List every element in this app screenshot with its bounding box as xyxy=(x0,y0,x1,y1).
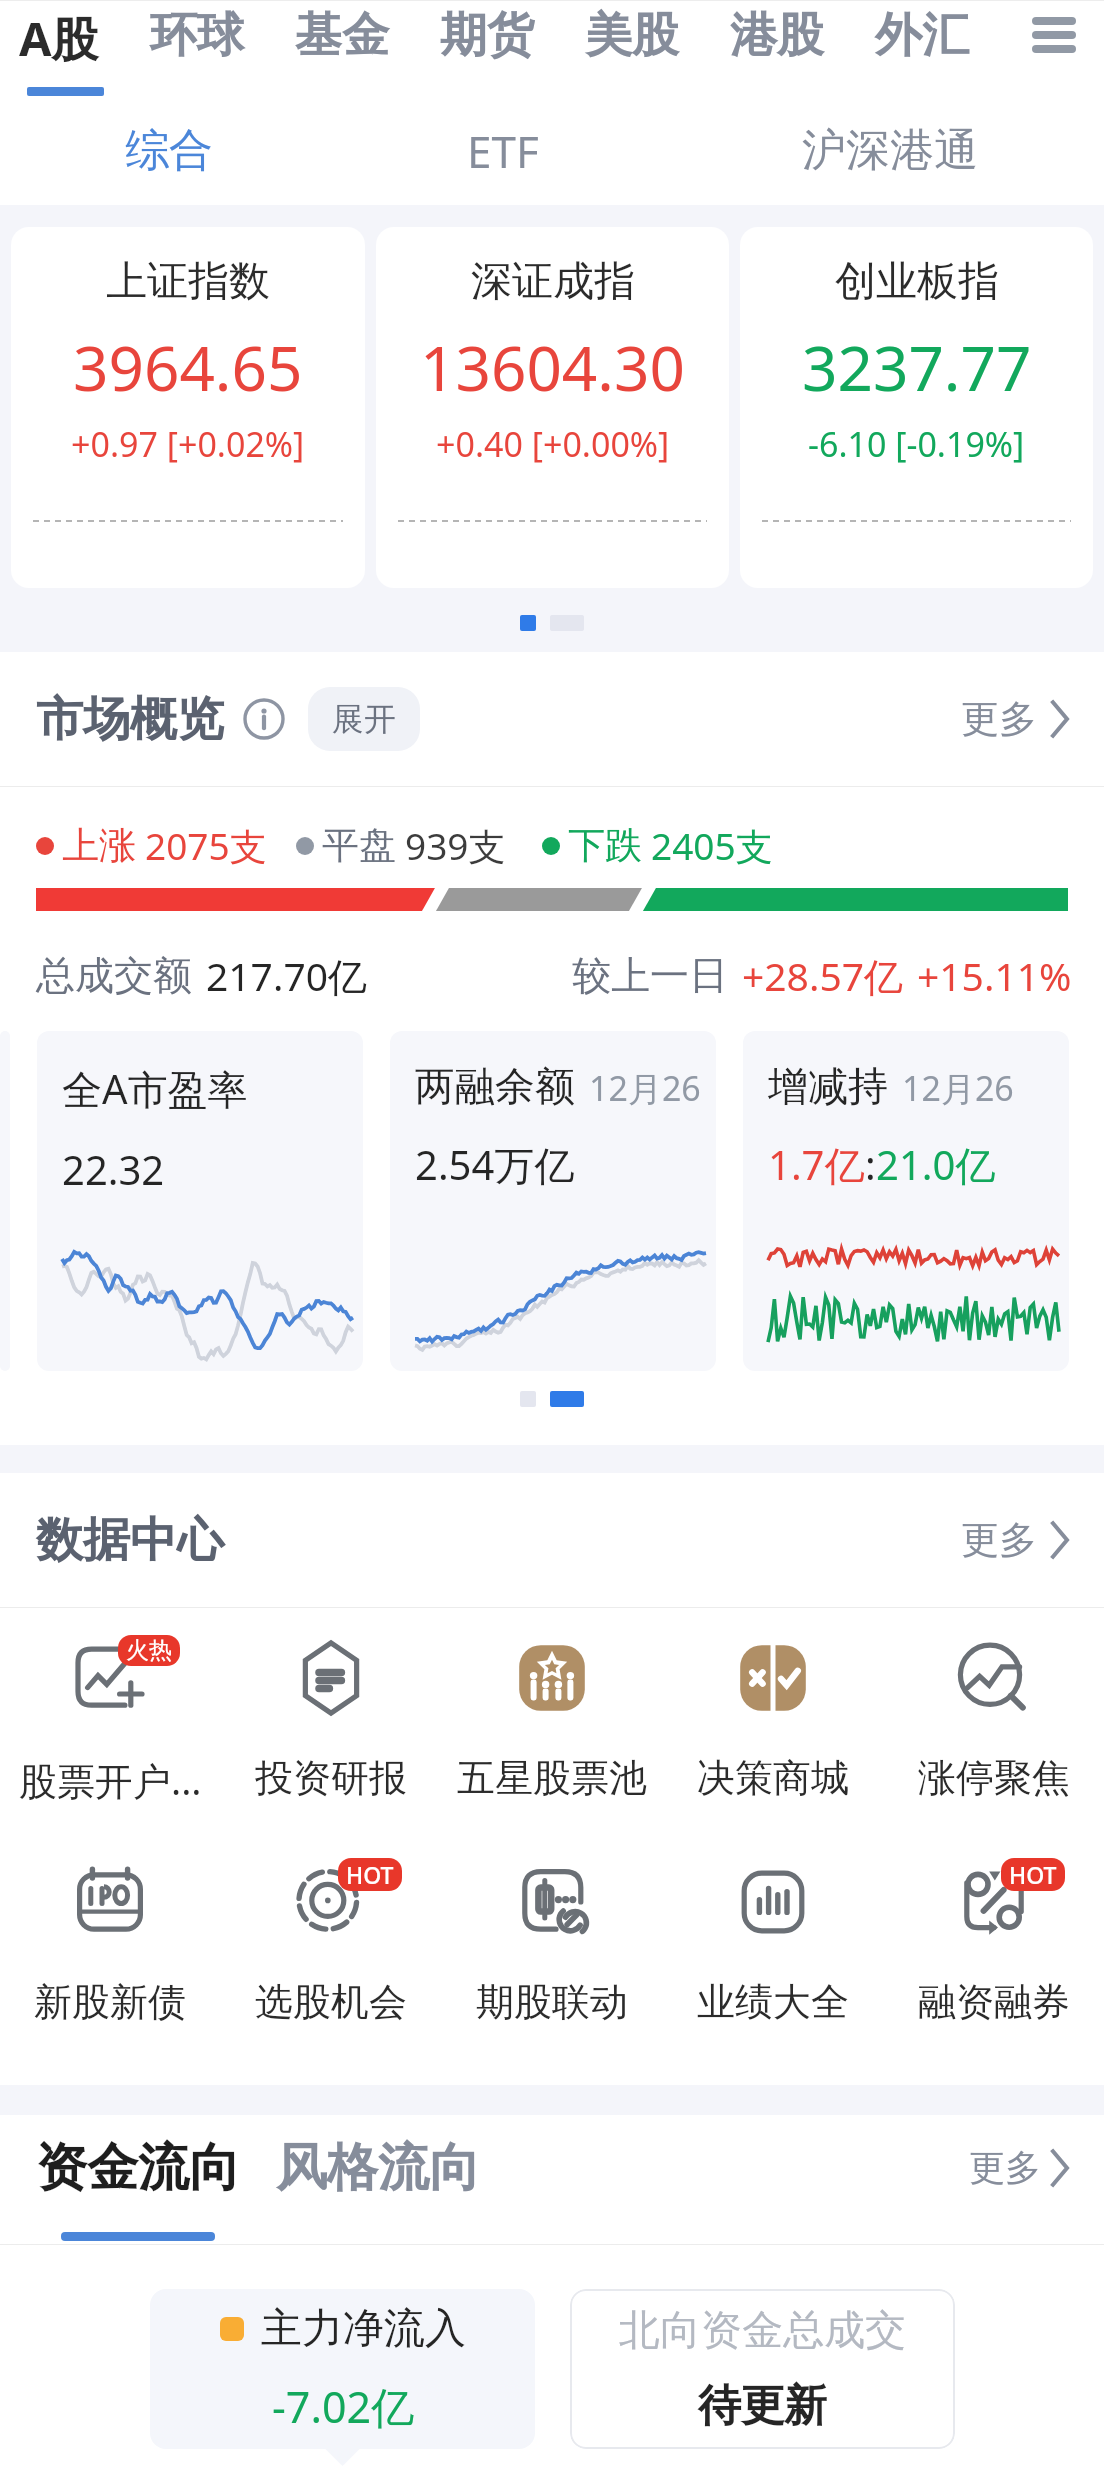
staticText: HOT xyxy=(1009,1859,1057,1890)
staticText: ETF xyxy=(467,121,539,181)
button[interactable]: 两融余额 xyxy=(390,1031,716,1371)
button[interactable]: 上证指数 xyxy=(11,227,365,588)
button[interactable]: 环球 xyxy=(150,0,244,80)
button[interactable]: 沪深港通 xyxy=(715,96,1064,205)
button[interactable]: 资金流向 xyxy=(36,2136,240,2200)
staticText: 股票开户... xyxy=(19,1754,202,1806)
button[interactable]: 业绩大全 xyxy=(662,1862,883,2026)
button[interactable]: ETF xyxy=(291,96,715,205)
staticText: 2.54万亿 xyxy=(415,1137,575,1192)
staticText: 主力净流入 xyxy=(261,2303,466,2355)
button[interactable]: 全A市盈率 xyxy=(37,1031,363,1371)
button[interactable]: 创业板指 xyxy=(740,227,1093,588)
button[interactable]: 火热 xyxy=(0,1638,220,1806)
staticText: 沪深港通 xyxy=(802,123,978,178)
button[interactable]: 更多 xyxy=(961,1506,1071,1574)
staticText: 港股 xyxy=(730,6,824,65)
staticText: 涨停聚焦 xyxy=(918,1754,1070,1802)
button[interactable]: 期股联动 xyxy=(441,1862,662,2026)
staticText: 22.32 xyxy=(62,1142,165,1196)
staticText: HOT xyxy=(346,1859,394,1890)
staticText: 选股机会 xyxy=(255,1978,407,2026)
staticText: 3964.65 xyxy=(73,325,303,409)
button[interactable]: 展开 xyxy=(308,687,420,751)
staticText: -7.02亿 xyxy=(272,2377,415,2436)
staticText: 创业板指 xyxy=(835,256,999,308)
staticText: +15.11% xyxy=(917,949,1072,1002)
staticText: 平盘 xyxy=(322,822,396,869)
staticText: 总成交额 xyxy=(36,951,192,1000)
staticText: 下跌 xyxy=(568,822,642,869)
staticText: 火热 xyxy=(126,1636,172,1665)
staticText: 环球 xyxy=(150,6,244,65)
staticText: 待更新 xyxy=(698,2379,827,2433)
button[interactable]: 港股 xyxy=(730,0,824,80)
staticText: 数据中心 xyxy=(36,1511,224,1570)
button[interactable]: 基金 xyxy=(295,0,389,80)
button[interactable]: 风格流向 xyxy=(276,2136,480,2200)
staticText: 资金流向 xyxy=(36,2136,240,2200)
staticText: 两融余额 xyxy=(415,1061,575,1111)
staticText: 更多 xyxy=(961,695,1037,743)
staticText: -6.10 [-0.19%] xyxy=(808,421,1025,467)
staticText: 投资研报 xyxy=(255,1754,407,1802)
staticText: 2405支 xyxy=(651,820,773,871)
button[interactable]: Menu xyxy=(1024,0,1084,70)
staticText: 外汇 xyxy=(875,6,969,65)
staticText: 217.70亿 xyxy=(206,949,367,1002)
button[interactable]: 决策商城 xyxy=(662,1638,883,1802)
staticText: 更多 xyxy=(961,1516,1037,1564)
staticText: 决策商城 xyxy=(697,1754,849,1802)
staticText: 综合 xyxy=(125,123,213,178)
button[interactable]: HOT xyxy=(220,1862,441,2026)
staticText: 12月26 xyxy=(902,1065,1014,1111)
staticText: A股 xyxy=(19,6,99,70)
button[interactable]: A股 xyxy=(19,0,99,80)
button[interactable]: 综合 xyxy=(47,96,291,205)
staticText: 1.7亿 xyxy=(768,1137,865,1192)
staticText: 21.0亿 xyxy=(876,1137,996,1192)
staticText: 上证指数 xyxy=(106,256,270,308)
button[interactable]: 更多 xyxy=(969,2135,1071,2200)
staticText: 更多 xyxy=(969,2145,1041,2190)
staticText: 展开 xyxy=(332,699,396,739)
staticText: 13604.30 xyxy=(420,325,685,409)
staticText: : xyxy=(865,1137,876,1191)
staticText: 较上一日 xyxy=(572,951,728,1000)
button[interactable]: Info xyxy=(243,698,285,740)
staticText: 深证成指 xyxy=(471,256,635,308)
staticText: 2075支 xyxy=(145,820,267,871)
button[interactable]: 深证成指 xyxy=(376,227,729,588)
staticText: 业绩大全 xyxy=(697,1978,849,2026)
staticText: 3237.77 xyxy=(802,325,1032,409)
staticText: 五星股票池 xyxy=(457,1754,647,1802)
staticText: 美股 xyxy=(585,6,679,65)
staticText: 增减持 xyxy=(768,1061,888,1111)
button[interactable]: 外汇 xyxy=(875,0,969,80)
staticText: 上涨 xyxy=(62,822,136,869)
button[interactable]: 美股 xyxy=(585,0,679,80)
staticText: 北向资金总成交 xyxy=(619,2305,906,2357)
staticText: 12月26 xyxy=(589,1065,701,1111)
staticText: 全A市盈率 xyxy=(62,1061,248,1116)
staticText: 风格流向 xyxy=(276,2136,480,2200)
button[interactable]: 增减持 xyxy=(743,1031,1069,1371)
staticText: 基金 xyxy=(295,6,389,65)
staticText: +0.40 [+0.00%] xyxy=(436,421,670,467)
button[interactable]: 更多 xyxy=(961,685,1071,753)
staticText: +0.97 [+0.02%] xyxy=(71,421,305,467)
button[interactable]: 北向资金总成交 xyxy=(570,2289,955,2449)
staticText: 新股新债 xyxy=(34,1978,186,2026)
button[interactable]: 新股新债 xyxy=(0,1862,220,2026)
staticText: 市场概览 xyxy=(36,690,224,749)
staticText: 939支 xyxy=(405,820,506,871)
button[interactable]: HOT xyxy=(883,1862,1104,2026)
button[interactable]: 主力净流入 xyxy=(150,2289,535,2449)
button[interactable]: 涨停聚焦 xyxy=(883,1638,1104,1802)
staticText: 期股联动 xyxy=(476,1978,628,2026)
button[interactable]: 投资研报 xyxy=(220,1638,441,1802)
button[interactable]: 期货 xyxy=(440,0,534,80)
button[interactable]: 五星股票池 xyxy=(441,1638,662,1802)
staticText: 融资融券 xyxy=(918,1978,1070,2026)
staticText: 期货 xyxy=(440,6,534,65)
